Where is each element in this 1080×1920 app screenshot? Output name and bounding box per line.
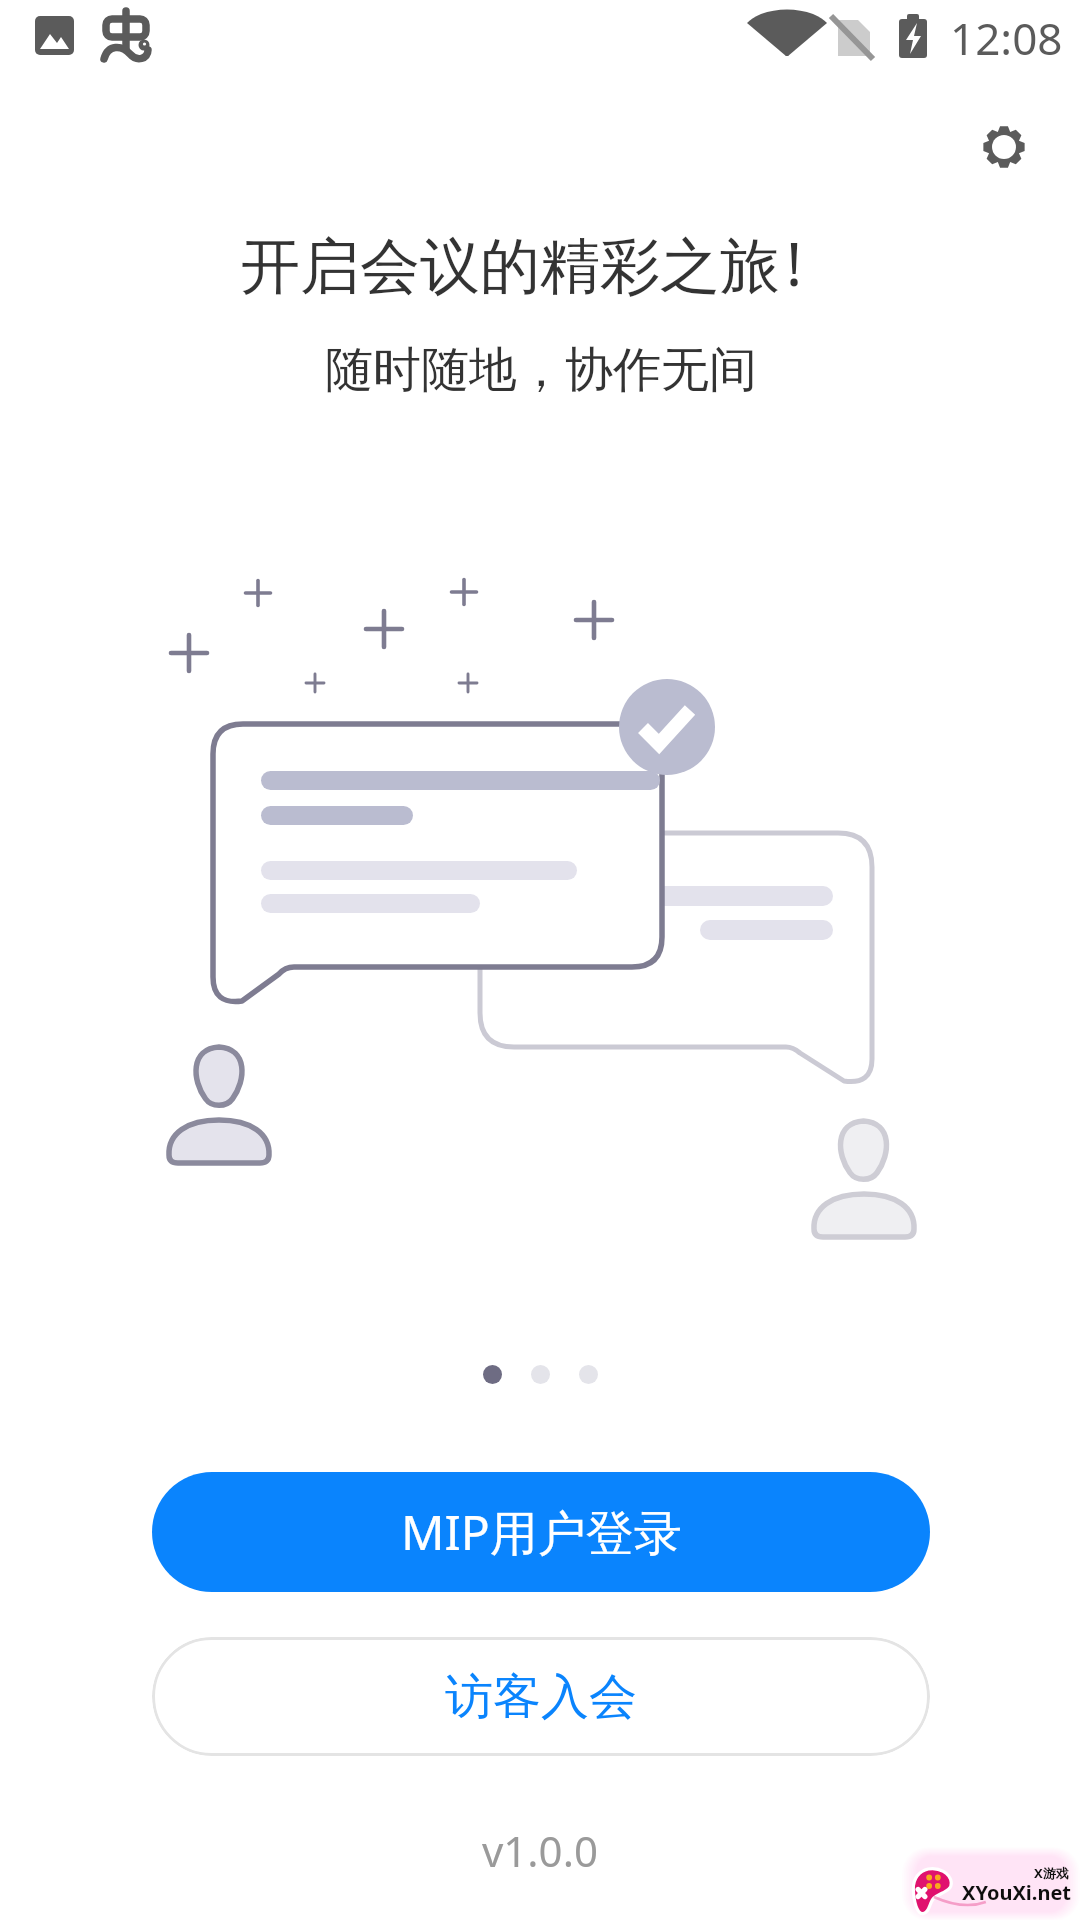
staticText: 随时随地，协作无间: [325, 340, 757, 400]
button[interactable]: Settings: [958, 101, 1050, 193]
staticText: !: [786, 222, 803, 304]
staticText: 12:08: [950, 8, 1063, 68]
button[interactable]: 访客入会: [152, 1637, 930, 1756]
staticText: X游戏: [1034, 1864, 1069, 1882]
staticText: XYouXi.net: [962, 1879, 1072, 1906]
button[interactable]: Page 2: [531, 1365, 550, 1384]
button[interactable]: MIP用户登录: [152, 1472, 930, 1592]
button[interactable]: Page 3: [579, 1365, 598, 1384]
staticText: MIP用户登录: [401, 1499, 682, 1565]
staticText: v1.0.0: [482, 1822, 598, 1879]
staticText: 访客入会: [445, 1667, 637, 1727]
staticText: 开启会议的精彩之旅: [240, 229, 780, 305]
button[interactable]: Page 1: [483, 1365, 502, 1384]
